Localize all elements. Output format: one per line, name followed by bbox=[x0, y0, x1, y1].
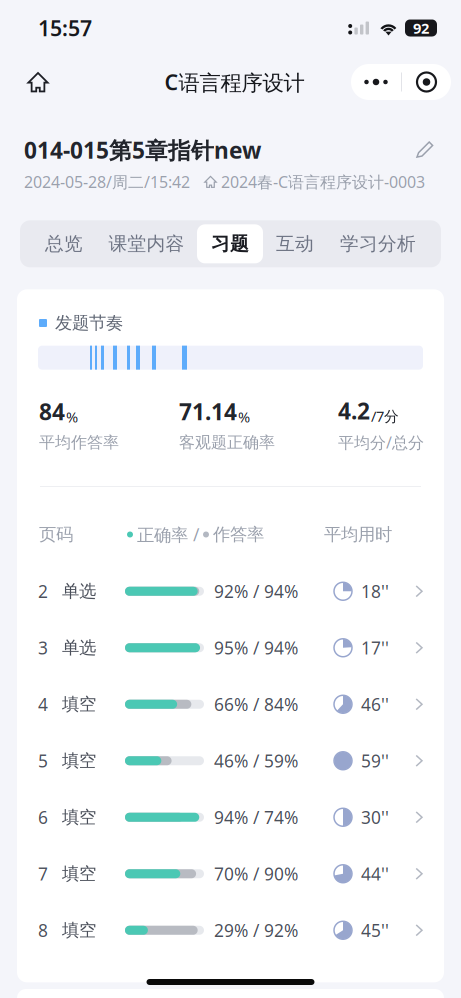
staticText: 作答率 bbox=[213, 524, 264, 545]
staticText: 45'' bbox=[361, 919, 389, 942]
staticText: 94% / 74% bbox=[214, 806, 298, 829]
staticText: 92 bbox=[413, 18, 429, 38]
button[interactable]: 学习分析 bbox=[327, 224, 429, 263]
staticText: 46% / 59% bbox=[214, 749, 298, 772]
staticText: 2024春-C语言程序设计-0003 bbox=[221, 171, 425, 192]
staticText: 单选 bbox=[62, 581, 96, 602]
staticText: 29% / 92% bbox=[214, 919, 298, 942]
button[interactable]: 8 bbox=[17, 902, 444, 958]
staticText: 平均用时 bbox=[324, 524, 392, 545]
staticText: % bbox=[66, 407, 78, 427]
button[interactable]: 3 bbox=[17, 619, 444, 676]
staticText: 填空 bbox=[62, 750, 96, 771]
staticText: 014-015第5章指针new bbox=[24, 135, 261, 165]
staticText: 正确率 / bbox=[137, 523, 199, 546]
staticText: 填空 bbox=[62, 920, 96, 941]
button[interactable]: Close bbox=[402, 64, 451, 100]
staticText: 92% / 94% bbox=[214, 580, 298, 603]
button[interactable]: Edit bbox=[411, 136, 439, 164]
staticText: 95% / 94% bbox=[214, 636, 298, 659]
staticText: 84 bbox=[39, 396, 65, 426]
staticText: 填空 bbox=[62, 694, 96, 715]
staticText: 17'' bbox=[361, 636, 389, 659]
staticText: 15:57 bbox=[38, 14, 92, 42]
staticText: 填空 bbox=[62, 863, 96, 884]
staticText: 3 bbox=[38, 636, 48, 659]
staticText: 互动 bbox=[276, 232, 314, 255]
staticText: 学习分析 bbox=[340, 232, 416, 255]
staticText: 2 bbox=[38, 580, 48, 603]
staticText: 6 bbox=[38, 806, 48, 829]
staticText: 44'' bbox=[361, 862, 389, 885]
staticText: % bbox=[238, 407, 250, 427]
staticText: 客观题正确率 bbox=[179, 432, 275, 452]
staticText: 总览 bbox=[45, 232, 83, 255]
button[interactable]: 6 bbox=[17, 789, 444, 845]
staticText: 70% / 90% bbox=[214, 862, 298, 885]
staticText: 填空 bbox=[62, 807, 96, 828]
staticText: 2024-05-28/周二/15:42 bbox=[24, 171, 190, 192]
staticText: 单选 bbox=[62, 637, 96, 658]
button[interactable]: 总览 bbox=[32, 224, 96, 263]
staticText: 5 bbox=[38, 749, 48, 772]
staticText: C语言程序设计 bbox=[164, 68, 304, 96]
button[interactable]: 5 bbox=[17, 732, 444, 789]
button[interactable]: 7 bbox=[17, 845, 444, 902]
staticText: 59'' bbox=[361, 749, 389, 772]
staticText: 4.2 bbox=[338, 396, 370, 426]
button[interactable]: More bbox=[351, 64, 401, 100]
staticText: 66% / 84% bbox=[214, 693, 298, 716]
button[interactable]: 4 bbox=[17, 676, 444, 732]
staticText: 习题 bbox=[211, 232, 249, 255]
staticText: 8 bbox=[38, 919, 48, 942]
staticText: 发题节奏 bbox=[55, 312, 123, 334]
button[interactable]: 课堂内容 bbox=[96, 224, 197, 263]
staticText: 课堂内容 bbox=[108, 232, 184, 255]
button[interactable]: 2 bbox=[17, 563, 444, 619]
staticText: 平均作答率 bbox=[39, 432, 119, 452]
staticText: 页码 bbox=[39, 524, 73, 545]
button[interactable]: 互动 bbox=[263, 224, 327, 263]
staticText: 平均分/总分 bbox=[338, 432, 424, 453]
staticText: 46'' bbox=[361, 693, 389, 716]
staticText: 30'' bbox=[361, 806, 389, 829]
button[interactable]: 习题 bbox=[197, 224, 263, 263]
staticText: /7分 bbox=[371, 406, 399, 426]
staticText: 18'' bbox=[361, 580, 389, 603]
staticText: 4 bbox=[38, 693, 48, 716]
button[interactable]: Home bbox=[18, 62, 58, 102]
staticText: 71.14 bbox=[179, 396, 237, 426]
staticText: 7 bbox=[38, 862, 48, 885]
